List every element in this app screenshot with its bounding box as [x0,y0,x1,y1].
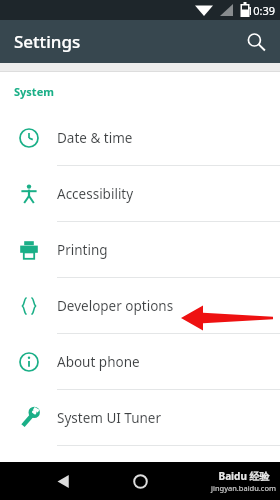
staticText: Developer options [57,297,174,315]
button[interactable]: System UI Tuner [0,390,280,445]
button[interactable]: Developer options [0,278,280,333]
button[interactable]: About phone [0,334,280,389]
staticText: Baidu 经验 [218,469,270,483]
staticText: About phone [57,353,140,371]
staticText: System UI Tuner [57,409,162,427]
button[interactable]: Back [45,463,81,499]
staticText: System [14,84,54,99]
staticText: Date & time [57,129,133,147]
staticText: Settings [14,30,81,53]
staticText: Printing [57,241,108,259]
button[interactable]: Search [238,24,274,60]
button[interactable]: Printing [0,222,280,277]
button[interactable]: Home [122,463,158,499]
staticText: 10:39 [247,3,276,18]
button[interactable]: Date & time [0,110,280,165]
button[interactable]: Accessibility [0,166,280,221]
staticText: jingyan.baidu.com [211,483,276,493]
staticText: Accessibility [57,185,134,203]
